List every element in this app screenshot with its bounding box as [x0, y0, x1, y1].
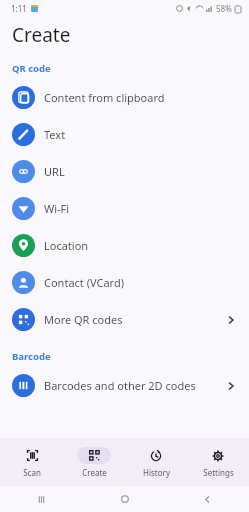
staticText: Content from clipboard: [44, 90, 165, 105]
staticText: Wi-Fi: [44, 201, 70, 216]
button[interactable]: More QR codes: [0, 301, 249, 338]
button[interactable]: Wi-Fi: [0, 190, 249, 227]
staticText: Barcodes and other 2D codes: [44, 378, 196, 393]
button[interactable]: Create: [63, 438, 125, 486]
button[interactable]: Back: [166, 486, 249, 512]
staticText: QR code: [12, 62, 51, 75]
staticText: Contact (VCard): [44, 275, 124, 290]
button[interactable]: URL: [0, 153, 249, 190]
staticText: History: [143, 467, 170, 478]
staticText: 58%: [216, 3, 232, 14]
button[interactable]: Barcodes and other 2D codes: [0, 367, 249, 404]
staticText: Create: [12, 22, 71, 48]
staticText: Create: [82, 467, 107, 478]
button[interactable]: Content from clipboard: [0, 79, 249, 116]
button[interactable]: Text: [0, 116, 249, 153]
staticText: Location: [44, 238, 89, 253]
button[interactable]: Scan: [0, 438, 63, 486]
button[interactable]: Settings: [187, 438, 249, 486]
staticText: Settings: [203, 467, 234, 478]
staticText: Scan: [23, 467, 41, 478]
button[interactable]: History: [125, 438, 187, 486]
button[interactable]: Contact (VCard): [0, 264, 249, 301]
button[interactable]: Recent apps: [0, 486, 83, 512]
staticText: Text: [44, 127, 66, 142]
staticText: 1:11: [11, 3, 27, 14]
button[interactable]: Location: [0, 227, 249, 264]
staticText: More QR codes: [44, 312, 123, 327]
button[interactable]: Home: [83, 486, 166, 512]
staticText: URL: [44, 164, 65, 179]
staticText: Barcode: [12, 350, 51, 363]
